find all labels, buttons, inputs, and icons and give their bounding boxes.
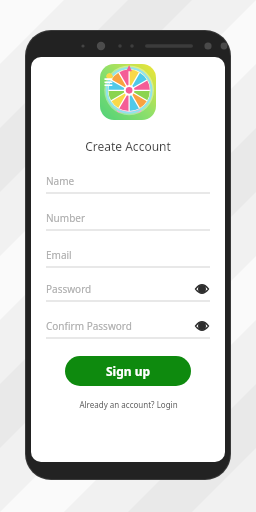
button[interactable]: Show password (194, 318, 210, 334)
button[interactable]: Password (46, 280, 210, 304)
staticText: Confirm Password (46, 319, 132, 333)
button[interactable]: Confirm Password (46, 317, 210, 341)
staticText: Create Account (33, 138, 223, 154)
staticText: Password (46, 282, 92, 296)
button[interactable]: Name (46, 172, 210, 196)
button[interactable]: Number (46, 209, 210, 233)
staticText: Email (46, 248, 72, 262)
staticText: Sign up (106, 363, 151, 379)
button[interactable]: Sign up (65, 356, 191, 386)
staticText: Number (46, 211, 86, 225)
button[interactable]: Email (46, 246, 210, 270)
button[interactable]: Show password (194, 281, 210, 297)
staticText: Name (46, 174, 75, 188)
button[interactable]: Already an account? Login (33, 396, 223, 412)
staticText: Already an account? Login (79, 399, 178, 410)
